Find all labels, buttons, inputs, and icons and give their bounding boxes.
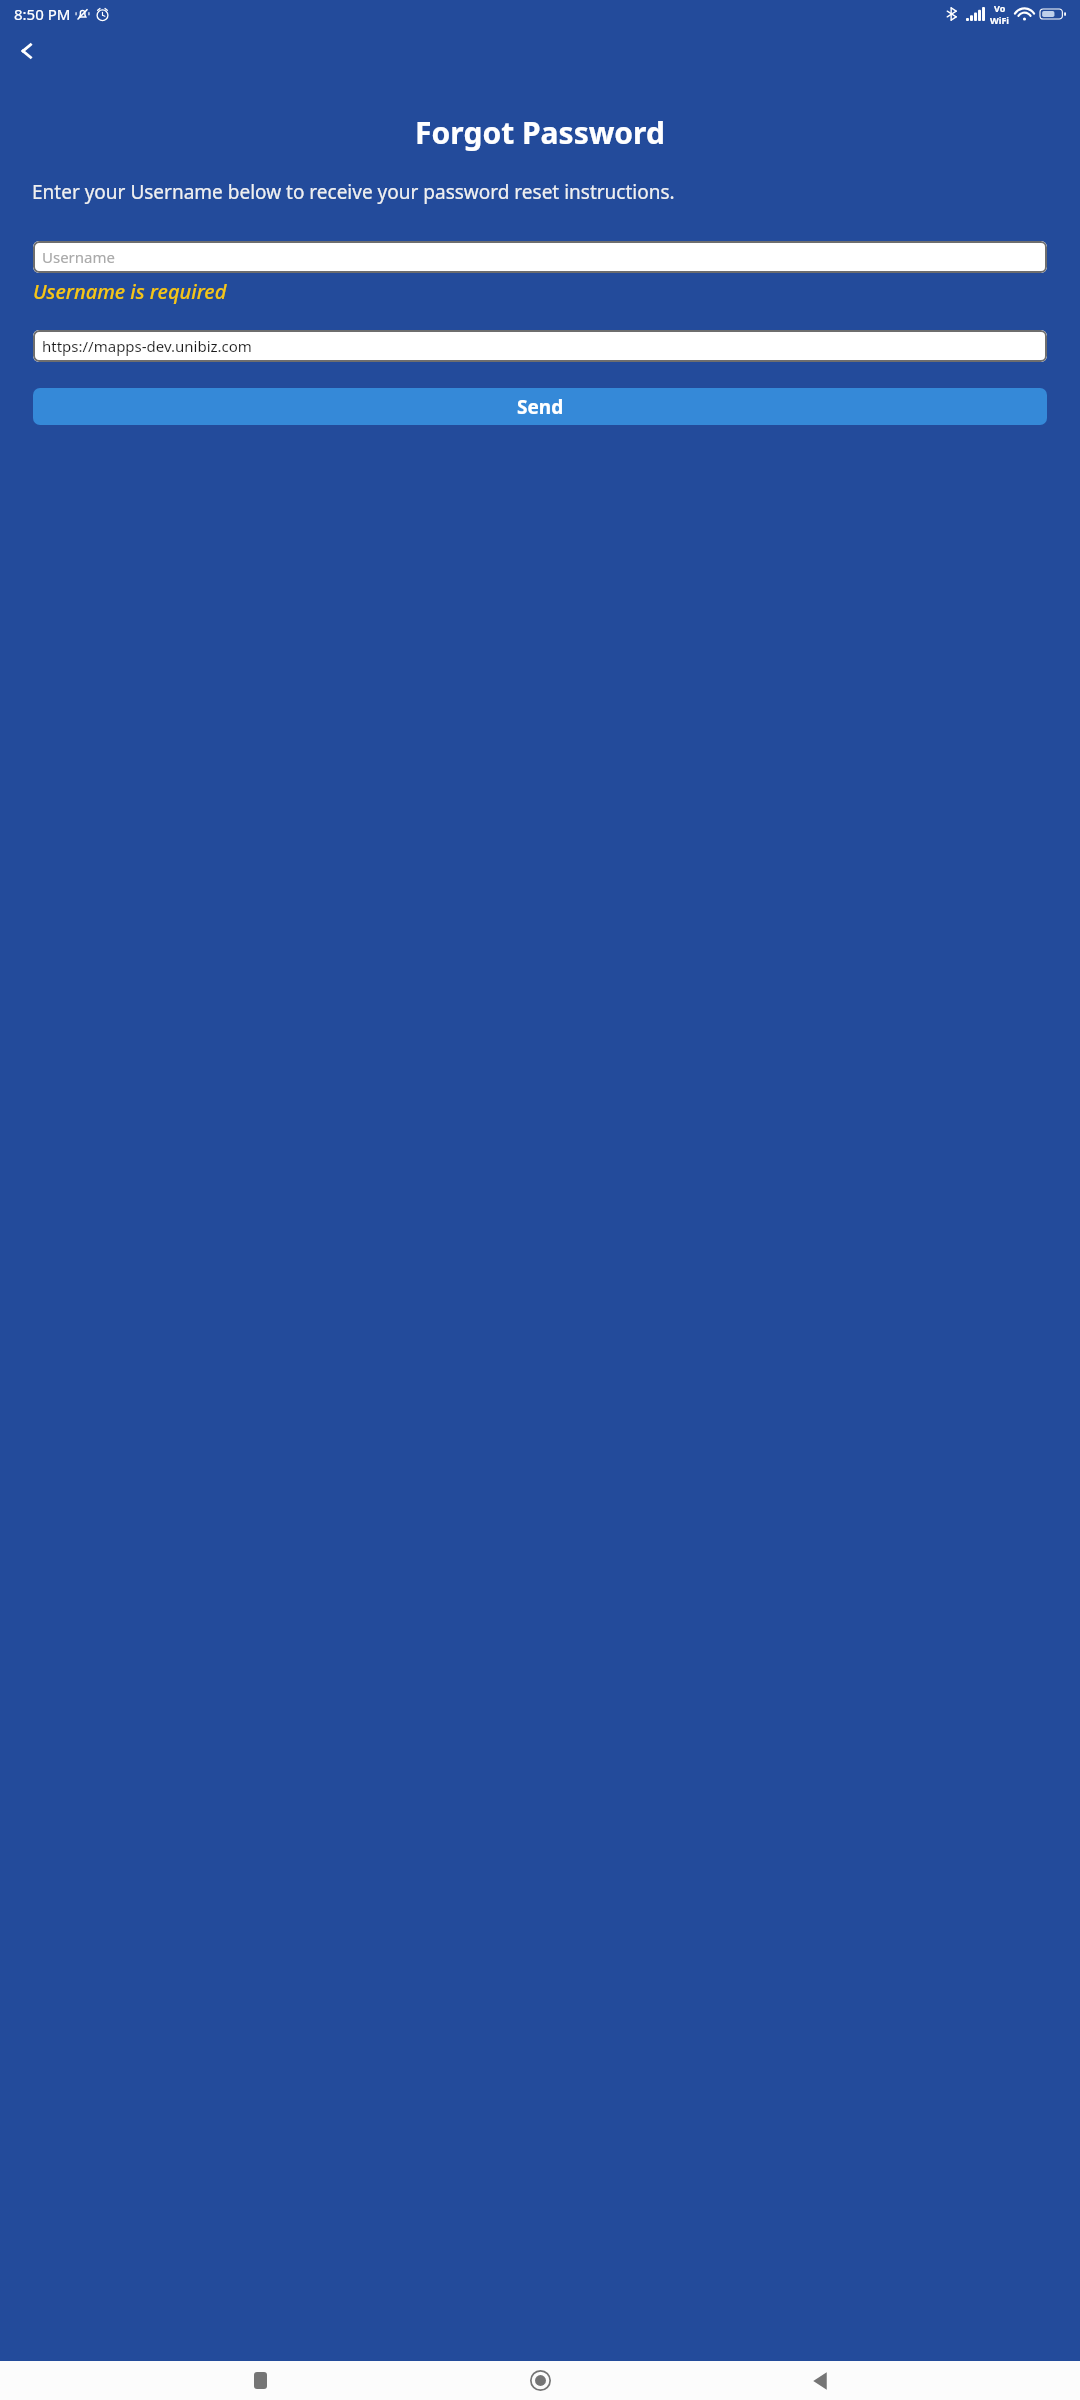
- button[interactable]: Back: [800, 2361, 840, 2400]
- button[interactable]: Back: [10, 34, 44, 68]
- staticText: Username is required: [33, 278, 227, 305]
- button[interactable]: Username: [33, 241, 1047, 273]
- staticText: https://mapps-dev.unibiz.com: [42, 336, 252, 356]
- staticText: 8:50 PM: [14, 4, 71, 24]
- staticText: Vo: [994, 2, 1006, 14]
- button[interactable]: Send: [33, 388, 1047, 425]
- staticText: Username: [42, 247, 115, 267]
- button[interactable]: https://mapps-dev.unibiz.com: [33, 330, 1047, 362]
- button[interactable]: Home: [520, 2361, 560, 2400]
- staticText: WiFi: [990, 14, 1010, 26]
- staticText: Enter your Username below to receive you…: [32, 179, 1022, 205]
- button[interactable]: Recents: [240, 2361, 280, 2400]
- staticText: Forgot Password: [0, 112, 1080, 153]
- staticText: Send: [517, 394, 564, 420]
